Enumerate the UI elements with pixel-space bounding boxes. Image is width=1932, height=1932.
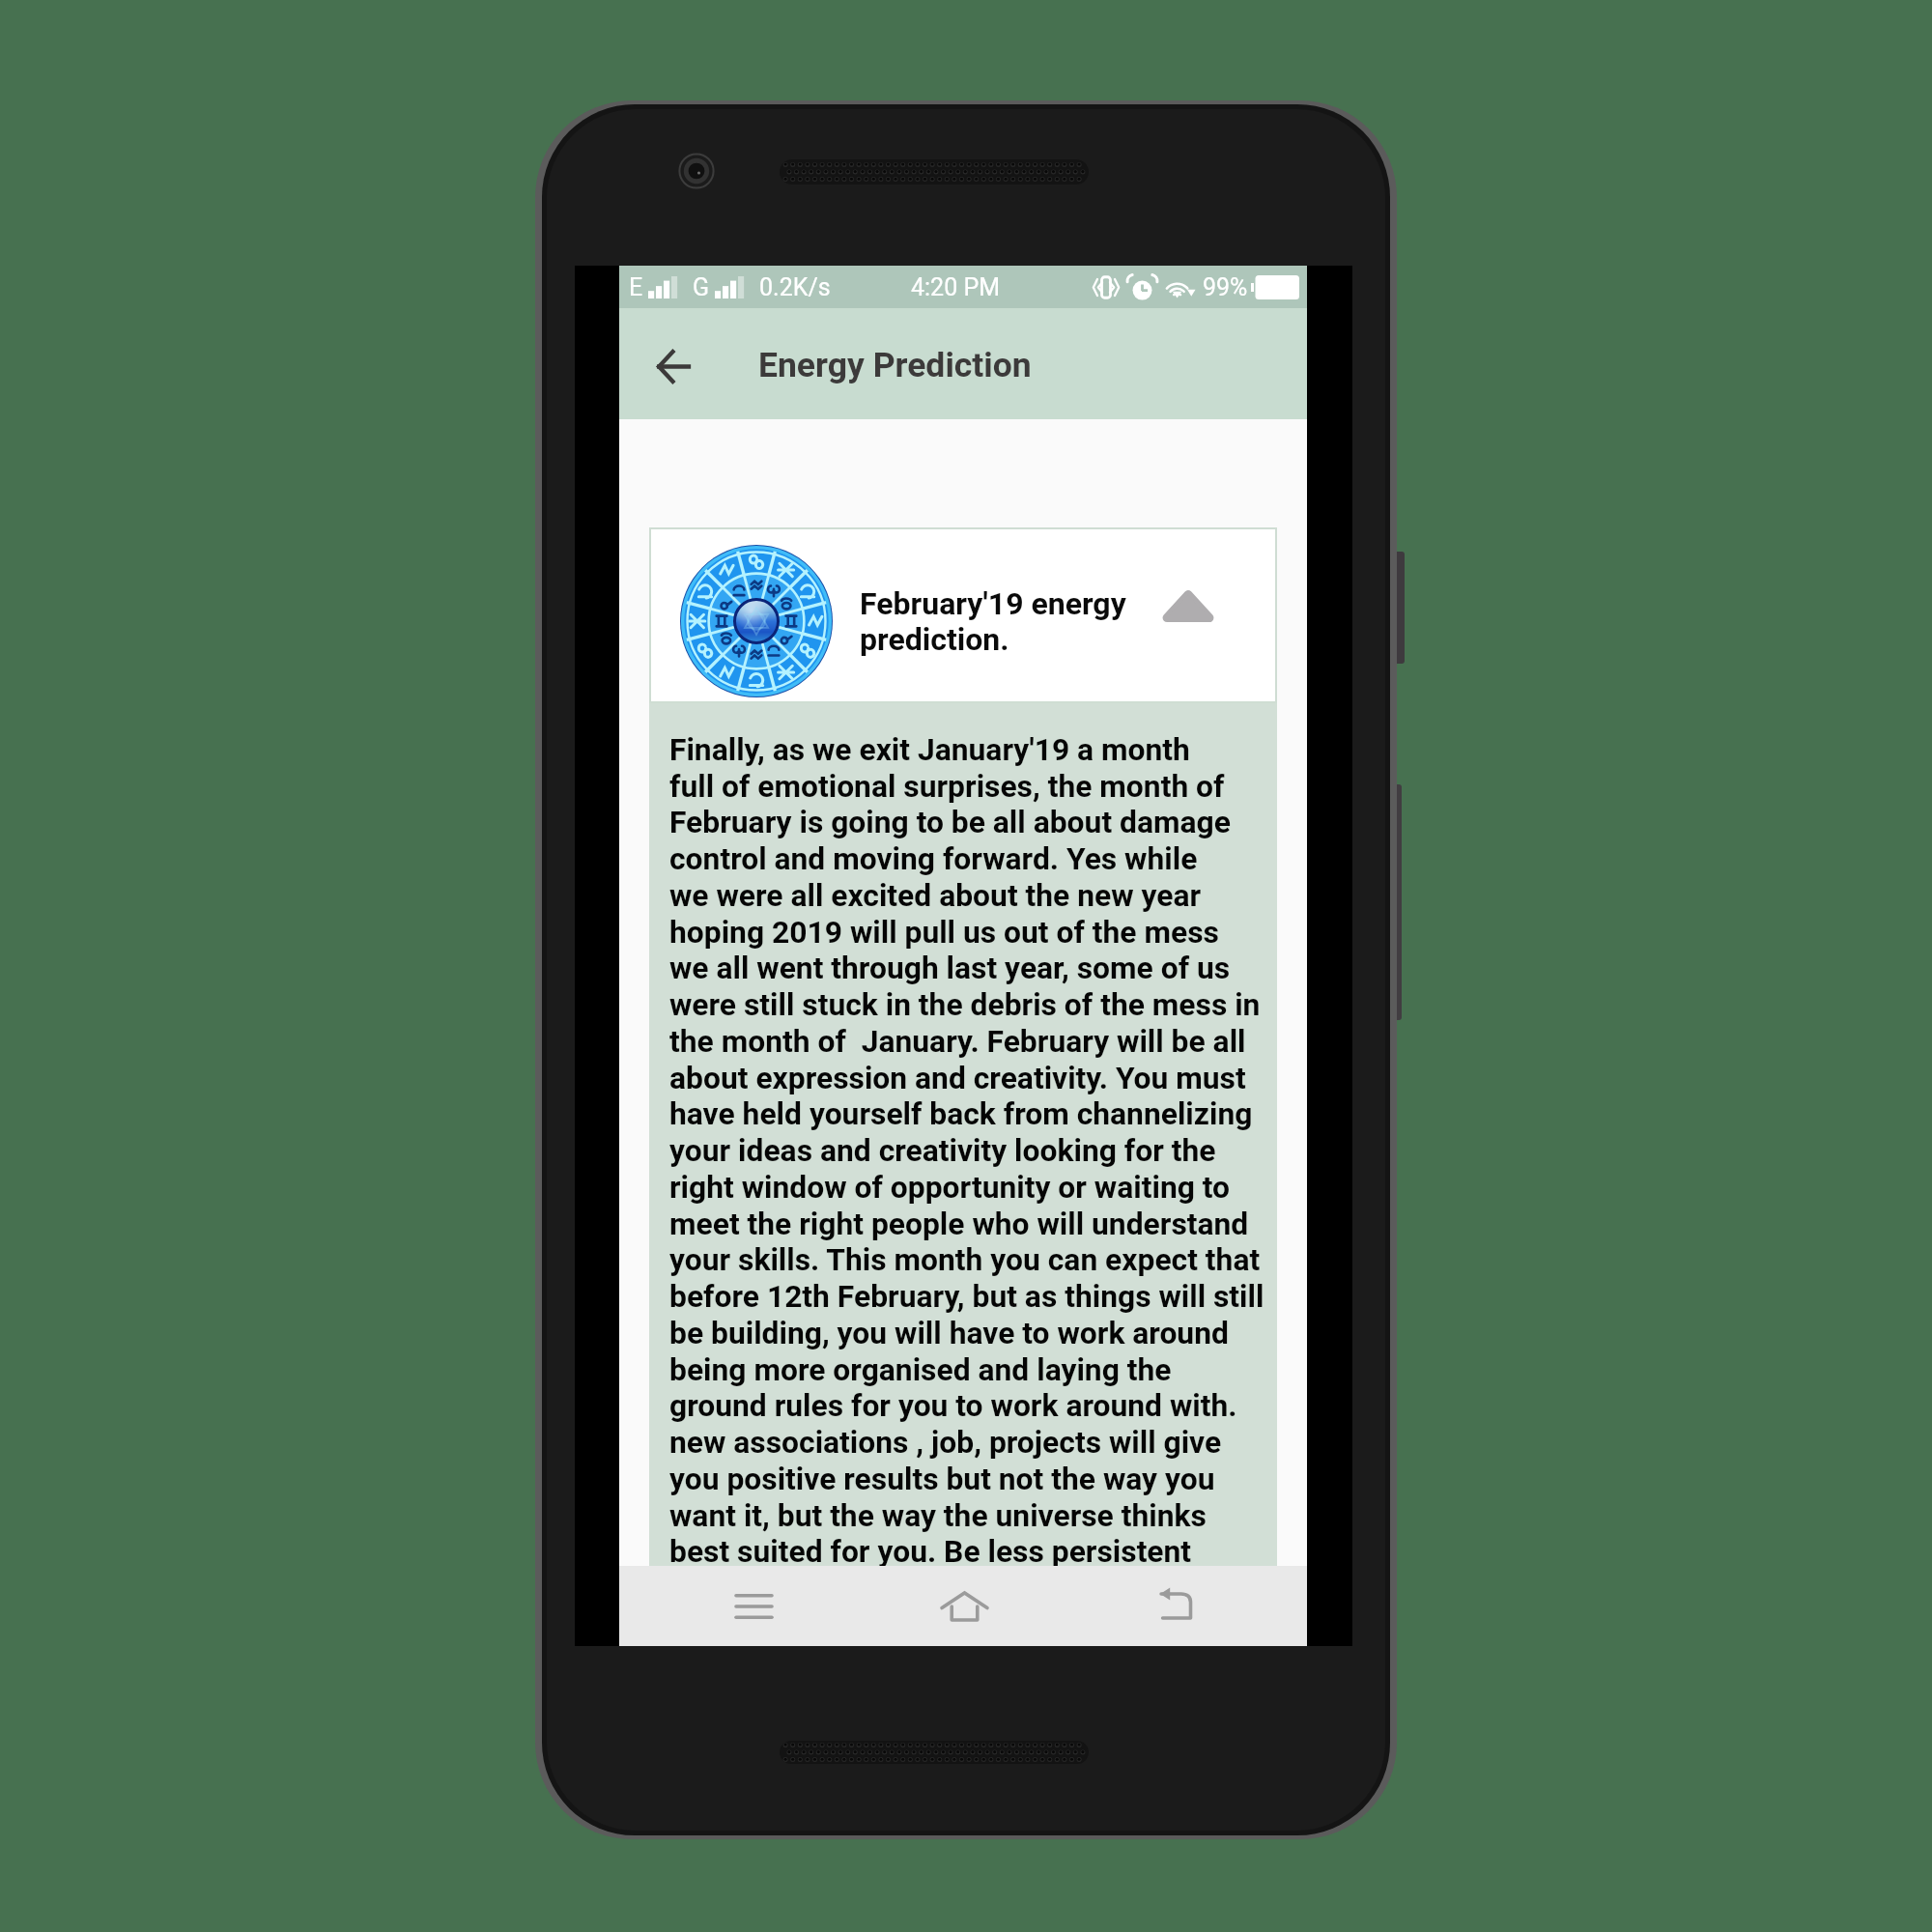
staticText: Energy Prediction (758, 345, 1032, 385)
staticText: meet the right people who will understan… (669, 1206, 1297, 1241)
staticText: before 12th February, but as things will… (669, 1278, 1297, 1314)
button[interactable]: Back (1135, 1566, 1212, 1646)
staticText: about expression and creativity. You mus… (669, 1060, 1297, 1095)
staticText: be building, you will have to work aroun… (669, 1315, 1297, 1350)
button[interactable]: February'19 energy (651, 529, 1275, 701)
staticText: hoping 2019 will pull us out of the mess (669, 914, 1297, 950)
staticText: control and moving forward. Yes while (669, 840, 1297, 876)
staticText: 0.2K/s (759, 273, 831, 301)
staticText: prediction. (860, 621, 1207, 658)
staticText: G (693, 273, 710, 301)
staticText: right window of opportunity or waiting t… (669, 1169, 1297, 1205)
staticText: your ideas and creativity looking for th… (669, 1132, 1297, 1168)
staticText: best suited for you. Be less persistent (669, 1533, 1297, 1569)
staticText: ground rules for you to work around with… (669, 1387, 1297, 1423)
button[interactable]: Navigate up (630, 327, 715, 405)
staticText: Finally, as we exit January'19 a month (669, 731, 1297, 767)
button[interactable]: Recent apps (715, 1566, 792, 1646)
staticText: we were all excited about the new year (669, 877, 1297, 913)
staticText: full of emotional surprises, the month o… (669, 768, 1297, 804)
button[interactable]: Collapse (1146, 572, 1231, 639)
staticText: new associations , job, projects will gi… (669, 1424, 1297, 1460)
staticText: 99% (1203, 273, 1248, 301)
staticText: want it, but the way the universe thinks (669, 1497, 1297, 1533)
staticText: E (629, 273, 643, 301)
staticText: have held yourself back from channelizin… (669, 1095, 1297, 1131)
staticText: you positive results but not the way you (669, 1461, 1297, 1496)
staticText: were still stuck in the debris of the me… (669, 986, 1297, 1022)
staticText: February'19 energy (860, 585, 1207, 622)
button[interactable]: Home (921, 1566, 1008, 1646)
staticText: your skills. This month you can expect t… (669, 1241, 1297, 1277)
staticText: the month of January. February will be a… (669, 1023, 1297, 1059)
staticText: 4:20 PM (911, 273, 1001, 301)
staticText: being more organised and laying the (669, 1351, 1297, 1387)
staticText: February is going to be all about damage (669, 804, 1297, 839)
staticText: we all went through last year, some of u… (669, 950, 1297, 985)
